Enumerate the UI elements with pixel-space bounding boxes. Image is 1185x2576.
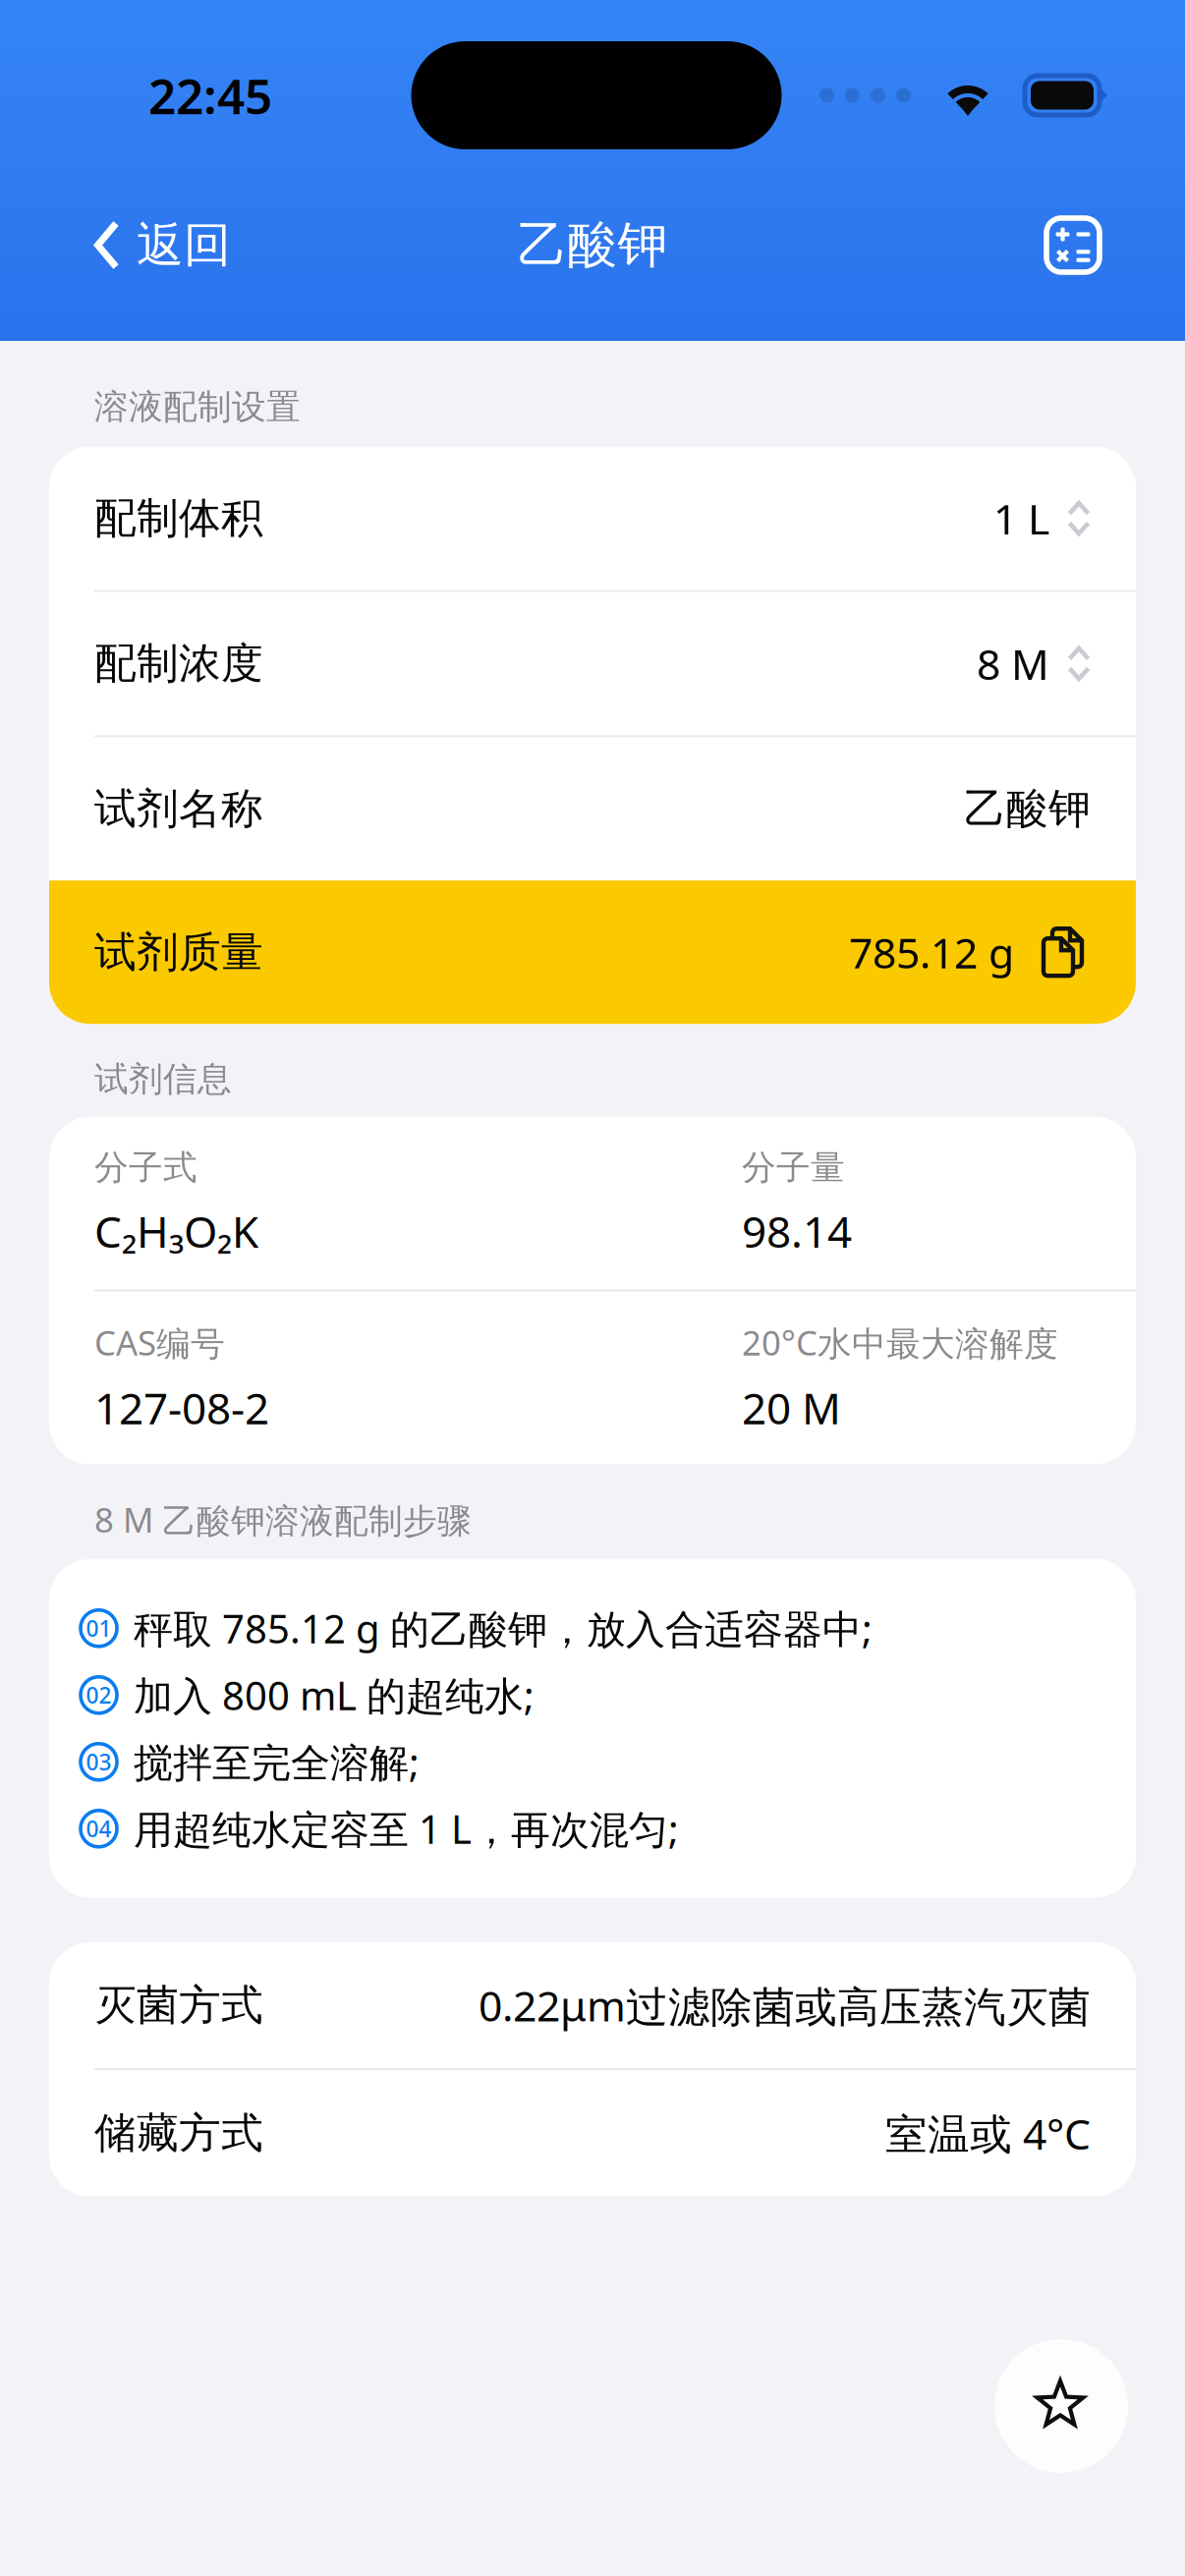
staticText: 03 xyxy=(86,1747,112,1777)
button[interactable]: 试剂质量 xyxy=(49,880,1136,1024)
staticText: C₂H₃O₂K xyxy=(94,1202,258,1260)
staticText: 分子式 xyxy=(94,1147,197,1189)
staticText: 试剂信息 xyxy=(94,1058,232,1100)
staticText: 04 xyxy=(86,1814,112,1843)
staticText: 20°C水中最大溶解度 xyxy=(742,1320,1058,1365)
staticText: 返回 xyxy=(137,216,231,274)
button[interactable]: 收藏 xyxy=(994,2339,1128,2473)
staticText: 8 M xyxy=(977,636,1049,691)
staticText: 用超纯水定容至 1 L，再次混匀; xyxy=(134,1803,679,1855)
staticText: 1 L xyxy=(993,491,1049,546)
staticText: 乙酸钾 xyxy=(517,215,668,276)
staticText: 加入 800 mL 的超纯水; xyxy=(134,1669,535,1721)
staticText: 配制体积 xyxy=(94,493,263,544)
button[interactable]: 配制浓度 xyxy=(49,592,1136,735)
staticText: 20 M xyxy=(742,1379,841,1436)
staticText: 分子量 xyxy=(742,1147,845,1189)
button[interactable]: 试剂名称 xyxy=(49,737,1136,880)
staticText: 98.14 xyxy=(742,1202,852,1260)
button[interactable]: 配制体积 xyxy=(49,447,1136,590)
staticText: 试剂质量 xyxy=(94,926,263,978)
staticText: 储藏方式 xyxy=(94,2107,263,2159)
staticText: 灭菌方式 xyxy=(94,1979,263,2031)
staticText: 02 xyxy=(86,1680,112,1710)
staticText: 127-08-2 xyxy=(94,1379,269,1436)
staticText: 乙酸钾 xyxy=(964,783,1091,834)
staticText: 8 M 乙酸钾溶液配制步骤 xyxy=(94,1497,472,1542)
staticText: 室温或 4°C xyxy=(885,2105,1091,2161)
staticText: 785.12 g xyxy=(849,924,1014,980)
staticText: CAS编号 xyxy=(94,1320,225,1365)
staticText: 22:45 xyxy=(148,63,272,127)
button[interactable]: 返回 xyxy=(0,193,260,298)
staticText: 试剂名称 xyxy=(94,783,263,834)
button[interactable]: 计算器 xyxy=(1015,196,1131,294)
staticText: 01 xyxy=(86,1613,112,1643)
staticText: 0.22μm过滤除菌或高压蒸汽灭菌 xyxy=(479,1977,1091,2033)
staticText: 搅拌至完全溶解; xyxy=(134,1736,420,1788)
staticText: 秤取 785.12 g 的乙酸钾，放入合适容器中; xyxy=(134,1602,873,1654)
staticText: 溶液配制设置 xyxy=(94,386,301,428)
staticText: 配制浓度 xyxy=(94,638,263,689)
